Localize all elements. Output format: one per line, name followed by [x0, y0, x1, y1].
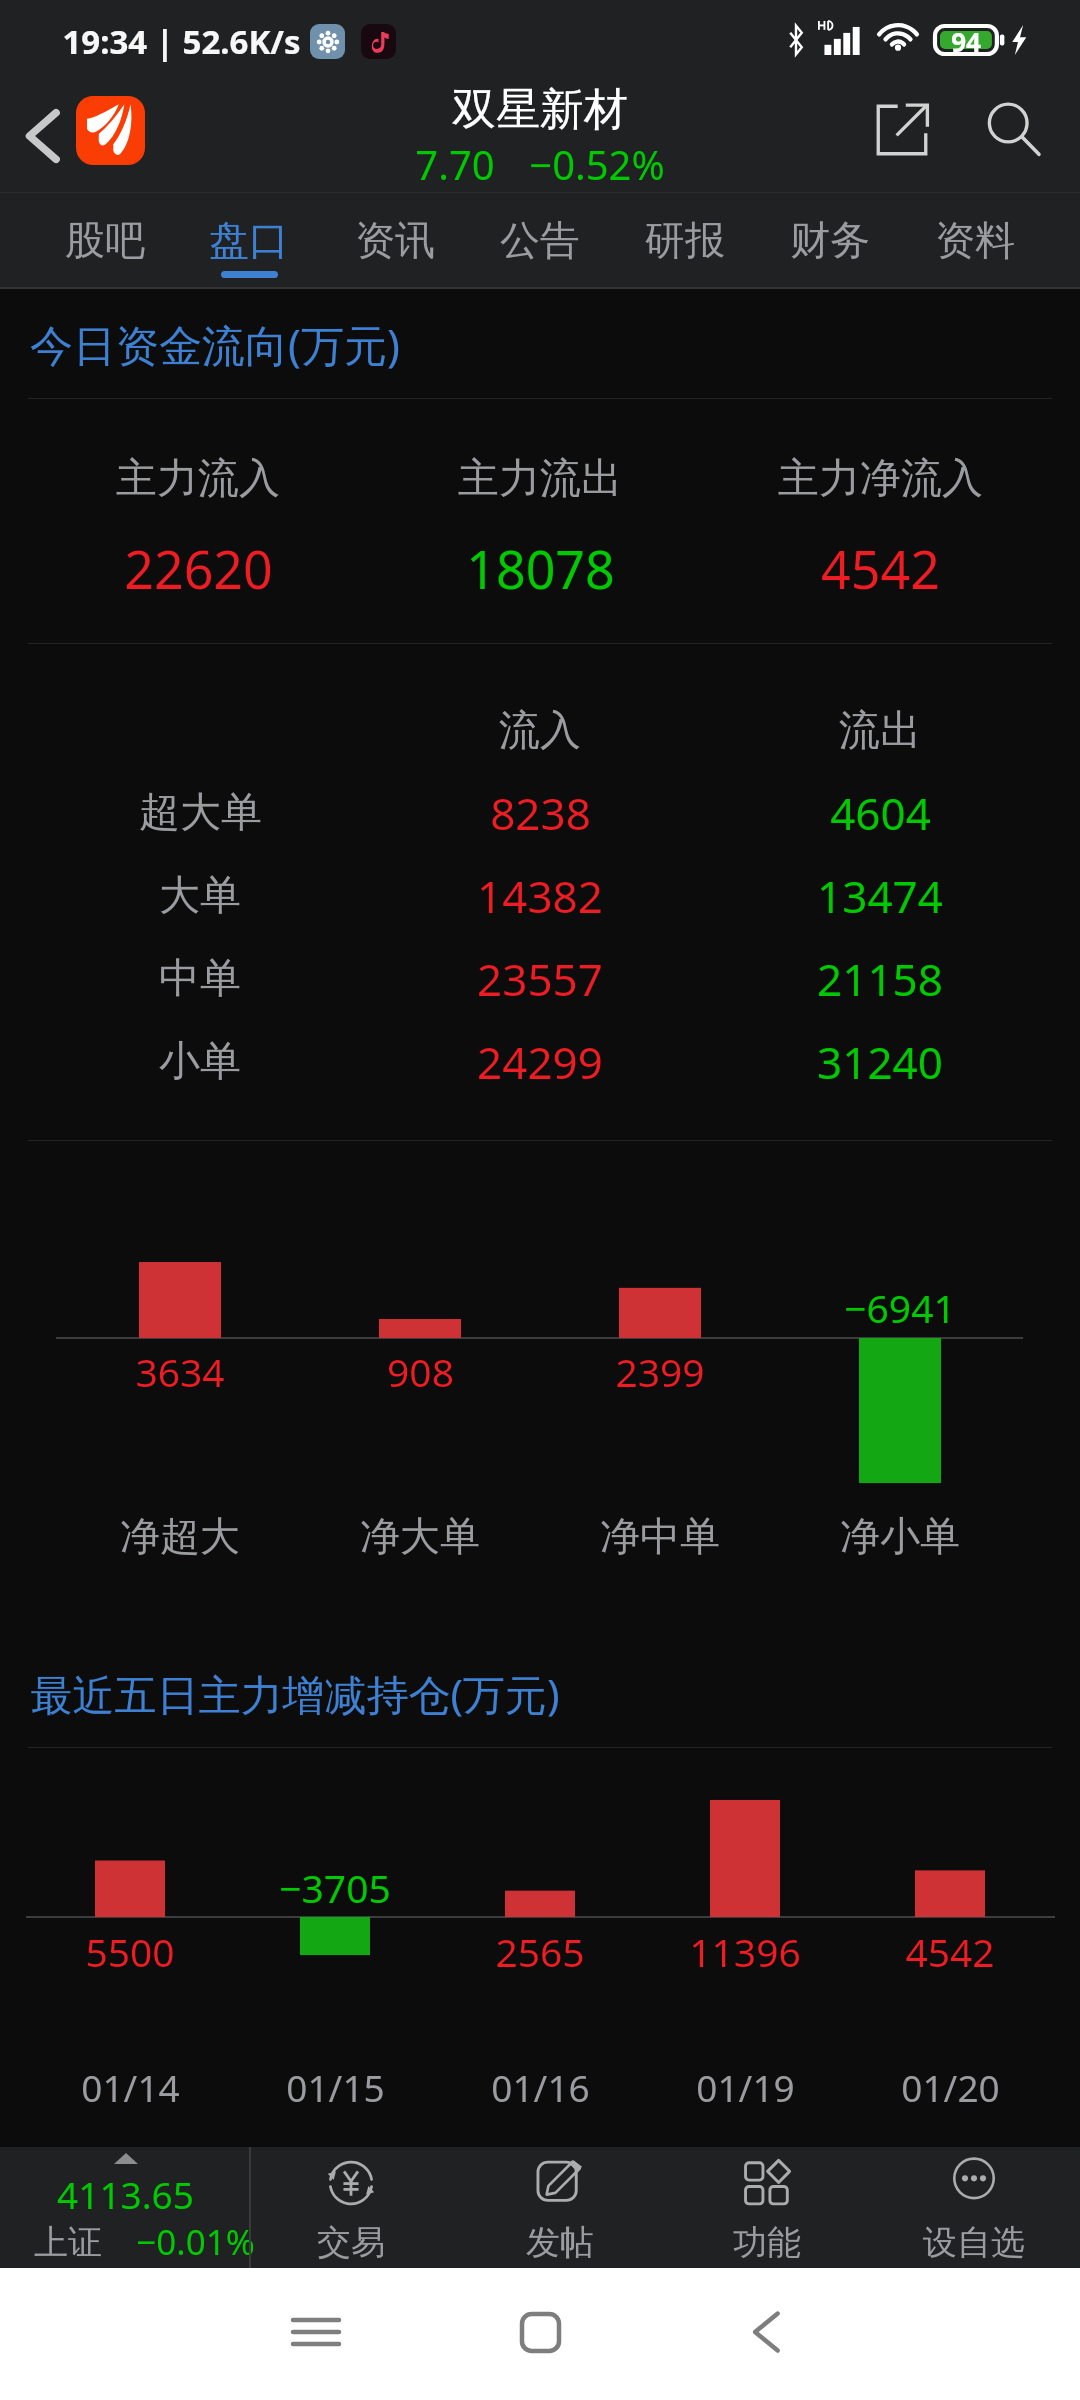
staticText: 超大单 — [139, 787, 262, 839]
button[interactable]: 交易 — [251, 2147, 451, 2268]
staticText: 流出 — [839, 705, 921, 757]
staticText: 2399 — [615, 1345, 705, 1398]
button[interactable]: 资讯 — [323, 192, 467, 289]
staticText: 5500 — [85, 1925, 175, 1978]
staticText: 中单 — [159, 953, 241, 1005]
button[interactable]: 4113.65 — [0, 2147, 249, 2268]
staticText: 13474 — [817, 866, 943, 926]
staticText: 01/19 — [696, 2062, 795, 2112]
staticText: 净大单 — [360, 1511, 480, 1561]
staticText: 净超大 — [120, 1511, 240, 1561]
staticText: 4604 — [830, 783, 931, 843]
staticText: 双星新材 — [452, 82, 628, 137]
staticText: 908 — [387, 1345, 454, 1398]
button[interactable]: 功能 — [667, 2147, 867, 2268]
staticText: 4542 — [821, 533, 940, 604]
staticText: 23557 — [477, 949, 603, 1009]
staticText: −0.52% — [529, 137, 665, 191]
staticText: 净中单 — [600, 1511, 720, 1561]
button[interactable]: 发帖 — [460, 2147, 660, 2268]
button[interactable]: 研报 — [613, 192, 757, 289]
staticText: 01/14 — [81, 2062, 180, 2112]
staticText: 2565 — [495, 1925, 585, 1978]
staticText: 设自选 — [923, 2221, 1025, 2264]
button[interactable]: 财务 — [758, 192, 902, 289]
staticText: 11396 — [689, 1925, 801, 1978]
staticText: 公告 — [500, 215, 580, 265]
staticText: −0.01% — [136, 2218, 255, 2266]
button[interactable]: 设自选 — [874, 2147, 1074, 2268]
button[interactable]: 股吧 — [33, 192, 177, 289]
button[interactable]: Search — [970, 86, 1058, 174]
staticText: 19:34 | 52.6K/s — [62, 19, 301, 64]
button[interactable]: Recent apps — [260, 2276, 372, 2388]
staticText: 主力净流入 — [778, 453, 983, 505]
button[interactable]: Back — [710, 2276, 822, 2388]
staticText: −6941 — [844, 1281, 956, 1334]
staticText: 大单 — [159, 870, 241, 922]
staticText: 主力流出 — [458, 453, 622, 505]
staticText: 01/15 — [286, 2062, 385, 2112]
staticText: 94 — [951, 24, 981, 56]
staticText: 流入 — [499, 705, 581, 757]
button[interactable]: Back — [0, 86, 84, 186]
staticText: 财务 — [790, 215, 870, 265]
staticText: 8238 — [490, 783, 591, 843]
button[interactable]: 公告 — [468, 192, 612, 289]
staticText: 发帖 — [526, 2221, 594, 2264]
staticText: 资讯 — [355, 215, 435, 265]
staticText: 14382 — [477, 866, 603, 926]
staticText: 01/16 — [491, 2062, 590, 2112]
staticText: 7.70 — [415, 137, 495, 191]
staticText: 股吧 — [65, 215, 145, 265]
staticText: 3634 — [135, 1345, 225, 1398]
staticText: 4113.65 — [57, 2169, 194, 2219]
staticText: 01/20 — [901, 2062, 1000, 2112]
staticText: 24299 — [477, 1032, 603, 1092]
button[interactable]: App home — [76, 96, 145, 165]
staticText: 交易 — [317, 2221, 385, 2264]
button[interactable]: Home — [484, 2276, 596, 2388]
staticText: 31240 — [817, 1032, 943, 1092]
staticText: 净小单 — [840, 1511, 960, 1561]
staticText: 22620 — [124, 533, 273, 604]
staticText: 今日资金流向(万元) — [30, 315, 400, 374]
staticText: 18078 — [466, 533, 615, 604]
staticText: 盘口 — [209, 215, 289, 265]
button[interactable]: 资料 — [903, 192, 1047, 289]
staticText: 21158 — [817, 949, 943, 1009]
staticText: 上证 — [34, 2221, 102, 2264]
staticText: 最近五日主力增减持仓(万元) — [30, 1665, 560, 1722]
button[interactable]: Share — [858, 86, 946, 174]
staticText: 小单 — [159, 1036, 241, 1088]
staticText: 研报 — [645, 215, 725, 265]
staticText: −3705 — [279, 1861, 391, 1914]
staticText: 资料 — [935, 215, 1015, 265]
button[interactable]: 盘口 — [177, 192, 321, 289]
staticText: 4542 — [905, 1925, 995, 1978]
staticText: 主力流入 — [116, 453, 280, 505]
staticText: 功能 — [733, 2221, 801, 2264]
